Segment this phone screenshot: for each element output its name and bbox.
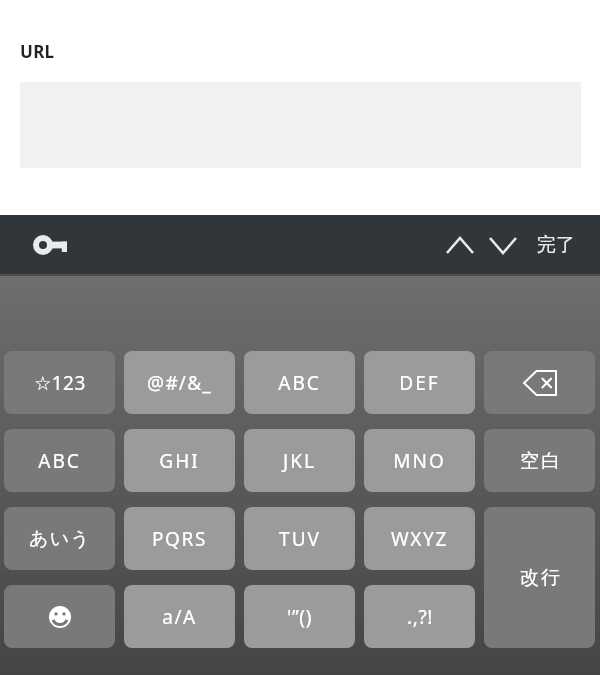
button[interactable]: ABC bbox=[244, 351, 355, 414]
staticText: ☆123 bbox=[34, 370, 86, 396]
staticText: ABC bbox=[278, 370, 321, 396]
staticText: DEF bbox=[399, 370, 440, 396]
button[interactable]: Previous field bbox=[436, 215, 484, 275]
button[interactable]: 空白 bbox=[484, 429, 595, 492]
staticText: 空白 bbox=[519, 449, 561, 473]
button[interactable]: Backspace bbox=[484, 351, 595, 414]
staticText: PQRS bbox=[152, 526, 207, 552]
button[interactable]: PQRS bbox=[124, 507, 235, 570]
button[interactable]: 改行 bbox=[484, 507, 595, 648]
button[interactable]: Emoji bbox=[4, 585, 115, 648]
button[interactable]: JKL bbox=[244, 429, 355, 492]
button[interactable]: @#/&_ bbox=[124, 351, 235, 414]
button[interactable]: Next field bbox=[479, 215, 527, 275]
button[interactable]: WXYZ bbox=[364, 507, 475, 570]
staticText: a/A bbox=[162, 604, 197, 630]
staticText: 改行 bbox=[519, 566, 561, 590]
button[interactable]: a/A bbox=[124, 585, 235, 648]
staticText: あいう bbox=[29, 527, 91, 551]
staticText: GHI bbox=[159, 448, 200, 474]
button[interactable]: Password bbox=[18, 215, 82, 275]
button[interactable]: ☆123 bbox=[4, 351, 115, 414]
staticText: '”() bbox=[287, 604, 312, 630]
staticText: WXYZ bbox=[391, 526, 448, 552]
staticText: 完了 bbox=[537, 233, 575, 257]
button[interactable]: DEF bbox=[364, 351, 475, 414]
button[interactable]: ABC bbox=[4, 429, 115, 492]
staticText: .,?! bbox=[407, 604, 433, 630]
staticText: TUV bbox=[279, 526, 321, 552]
button[interactable]: MNO bbox=[364, 429, 475, 492]
button[interactable]: GHI bbox=[124, 429, 235, 492]
button[interactable]: TUV bbox=[244, 507, 355, 570]
staticText: ABC bbox=[38, 448, 81, 474]
button[interactable]: '”() bbox=[244, 585, 355, 648]
button[interactable]: .,?! bbox=[364, 585, 475, 648]
staticText: URL bbox=[20, 40, 55, 63]
staticText: MNO bbox=[393, 448, 446, 474]
staticText: @#/&_ bbox=[147, 370, 212, 396]
staticText: JKL bbox=[283, 448, 316, 474]
button[interactable]: あいう bbox=[4, 507, 115, 570]
button[interactable]: 完了 bbox=[525, 215, 587, 275]
